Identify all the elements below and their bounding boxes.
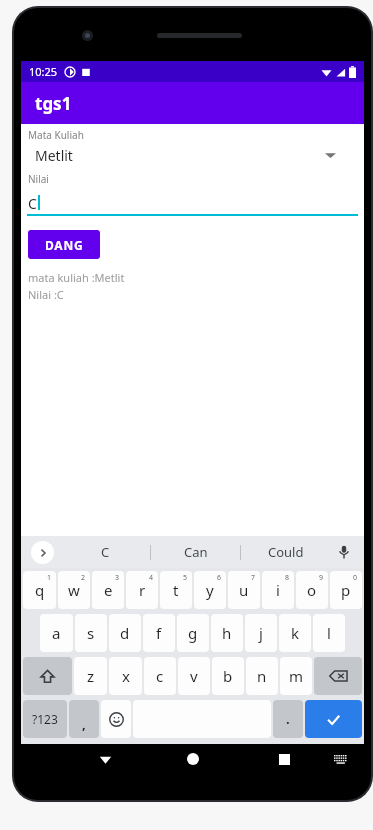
staticText: a <box>52 623 61 643</box>
button[interactable]: Recent apps <box>272 747 296 771</box>
button[interactable]: z <box>74 657 107 695</box>
button[interactable]: r <box>126 571 158 609</box>
staticText: b <box>223 666 233 686</box>
staticText: DANG <box>45 237 84 253</box>
staticText: . <box>286 710 290 728</box>
button[interactable]: , <box>69 700 99 738</box>
button[interactable]: x <box>109 657 142 695</box>
staticText: y <box>206 580 214 600</box>
button[interactable]: ?123 <box>23 700 67 738</box>
staticText: s <box>87 623 95 643</box>
button[interactable]: Voice input <box>334 542 354 562</box>
staticText: e <box>104 580 113 600</box>
staticText: h <box>222 623 232 643</box>
button[interactable]: Could <box>241 536 330 568</box>
button[interactable]: y <box>194 571 226 609</box>
staticText: j <box>259 623 263 643</box>
button[interactable]: C <box>61 536 150 568</box>
button[interactable]: w <box>58 571 90 609</box>
button[interactable]: C <box>21 194 364 216</box>
button[interactable]: l <box>313 614 345 652</box>
staticText: mata kuliah :Metlit <box>28 270 125 285</box>
staticText: Mata Kuliah <box>28 128 84 142</box>
button[interactable]: j <box>245 614 277 652</box>
button[interactable]: a <box>40 614 73 652</box>
staticText: w <box>68 580 80 600</box>
button[interactable]: e <box>92 571 124 609</box>
button[interactable]: n <box>246 657 278 695</box>
button[interactable]: k <box>279 614 311 652</box>
staticText: 4 <box>149 573 154 583</box>
staticText: 0 <box>353 573 358 583</box>
staticText: k <box>291 623 300 643</box>
button[interactable]: Enter <box>305 700 362 738</box>
button[interactable]: Backspace <box>314 657 362 695</box>
button[interactable]: . <box>273 700 303 738</box>
staticText: Can <box>184 543 208 561</box>
staticText: Could <box>268 543 304 561</box>
staticText: Nilai :C <box>28 287 64 302</box>
button[interactable]: Back <box>93 747 117 771</box>
button[interactable]: o <box>296 571 328 609</box>
button[interactable]: g <box>177 614 209 652</box>
staticText: 1 <box>47 573 52 583</box>
staticText: q <box>35 580 45 600</box>
button[interactable]: Shift <box>23 657 72 695</box>
staticText: r <box>139 580 146 600</box>
staticText: Nilai <box>28 172 49 186</box>
staticText: 10:25 <box>29 64 58 79</box>
button[interactable]: m <box>280 657 312 695</box>
staticText: f <box>156 623 162 643</box>
staticText: 6 <box>217 573 222 583</box>
staticText: ?123 <box>32 711 58 727</box>
staticText: z <box>87 666 95 686</box>
staticText: t <box>173 580 179 600</box>
staticText: 7 <box>251 573 256 583</box>
button[interactable]: Home <box>181 747 205 771</box>
button[interactable]: Can <box>151 536 240 568</box>
staticText: 8 <box>285 573 290 583</box>
staticText: , <box>82 715 86 733</box>
button[interactable]: Metlit <box>21 144 364 166</box>
button[interactable]: s <box>75 614 107 652</box>
button[interactable]: Emoji <box>101 700 131 738</box>
button[interactable]: More suggestions <box>31 541 54 564</box>
button[interactable]: p <box>330 571 362 609</box>
staticText: p <box>341 580 351 600</box>
button[interactable]: h <box>211 614 243 652</box>
button[interactable]: d <box>109 614 141 652</box>
button[interactable]: b <box>212 657 244 695</box>
staticText: m <box>289 666 304 686</box>
button[interactable]: c <box>144 657 176 695</box>
staticText: 9 <box>319 573 324 583</box>
button[interactable]: v <box>178 657 210 695</box>
staticText: 2 <box>81 573 86 583</box>
staticText: n <box>257 666 267 686</box>
button[interactable]: t <box>160 571 192 609</box>
staticText: o <box>307 580 317 600</box>
button[interactable]: u <box>228 571 260 609</box>
staticText: Metlit <box>35 146 73 165</box>
button[interactable]: Switch keyboard <box>330 749 350 769</box>
staticText: d <box>120 623 130 643</box>
staticText: g <box>188 623 198 643</box>
staticText: c <box>156 666 164 686</box>
staticText: 3 <box>115 573 120 583</box>
staticText: x <box>122 666 130 686</box>
button[interactable]: i <box>262 571 294 609</box>
staticText: l <box>327 623 331 643</box>
button[interactable]: DANG <box>28 230 100 259</box>
staticText: 5 <box>183 573 188 583</box>
staticText: tgs1 <box>35 92 72 115</box>
button[interactable]: q <box>23 571 56 609</box>
staticText: u <box>239 580 249 600</box>
staticText: C <box>28 194 37 210</box>
staticText: C <box>101 543 110 561</box>
button[interactable]: f <box>143 614 175 652</box>
staticText: i <box>276 580 280 600</box>
staticText: v <box>190 666 198 686</box>
